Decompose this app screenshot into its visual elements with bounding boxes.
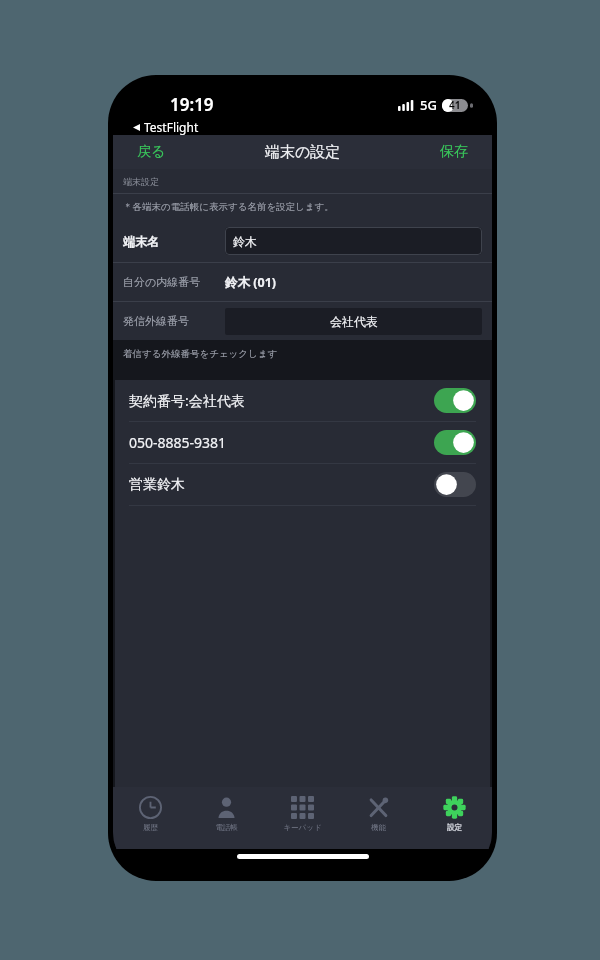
staticText: 鈴木 (233, 234, 257, 249)
staticText: 5G (420, 96, 437, 114)
button[interactable]: 電話帳 (188, 787, 264, 849)
staticText: 自分の内線番号 (123, 275, 225, 289)
staticText: 050-8885-9381 (129, 433, 434, 452)
staticText: 履歴 (143, 823, 158, 832)
staticText: 機能 (371, 823, 386, 832)
button[interactable]: On (434, 430, 476, 455)
staticText: TestFlight (144, 119, 199, 135)
staticText: 設定 (447, 823, 462, 832)
staticText: 鈴木 (01) (225, 274, 277, 291)
button[interactable]: 機能 (340, 787, 416, 849)
staticText: 電話帳 (215, 823, 238, 832)
button[interactable]: 契約番号:会社代表 (115, 380, 490, 421)
staticText: 契約番号:会社代表 (129, 391, 434, 410)
staticText: 保存 (440, 143, 468, 161)
staticText: 端末設定 (123, 176, 159, 187)
staticText: 端末の設定 (265, 143, 341, 162)
button[interactable]: 営業鈴木 (115, 464, 490, 505)
button[interactable]: 保存 (416, 135, 492, 169)
staticText: キーパッド (283, 823, 322, 832)
button[interactable]: Off (434, 472, 476, 497)
button[interactable]: キーパッド (264, 787, 340, 849)
button[interactable]: 発信外線番号 (113, 302, 492, 340)
staticText: 着信する外線番号をチェックします (123, 348, 278, 360)
staticText: 戻る (137, 143, 166, 161)
staticText: 会社代表 (330, 314, 378, 329)
staticText: 営業鈴木 (129, 476, 434, 494)
button[interactable]: 自分の内線番号 (113, 263, 492, 301)
button[interactable]: On (434, 388, 476, 413)
button[interactable]: 端末名 (113, 220, 492, 262)
button[interactable]: 履歴 (113, 787, 188, 849)
button[interactable]: 設定 (416, 787, 492, 849)
staticText: ＊各端末の電話帳に表示する名前を設定します。 (123, 201, 334, 213)
staticText: 端末名 (123, 234, 225, 249)
button[interactable]: 戻る (113, 135, 190, 169)
button[interactable]: 050-8885-9381 (115, 422, 490, 463)
staticText: 41 (449, 98, 461, 112)
staticText: 発信外線番号 (123, 314, 225, 328)
staticText: 19:19 (170, 93, 214, 116)
